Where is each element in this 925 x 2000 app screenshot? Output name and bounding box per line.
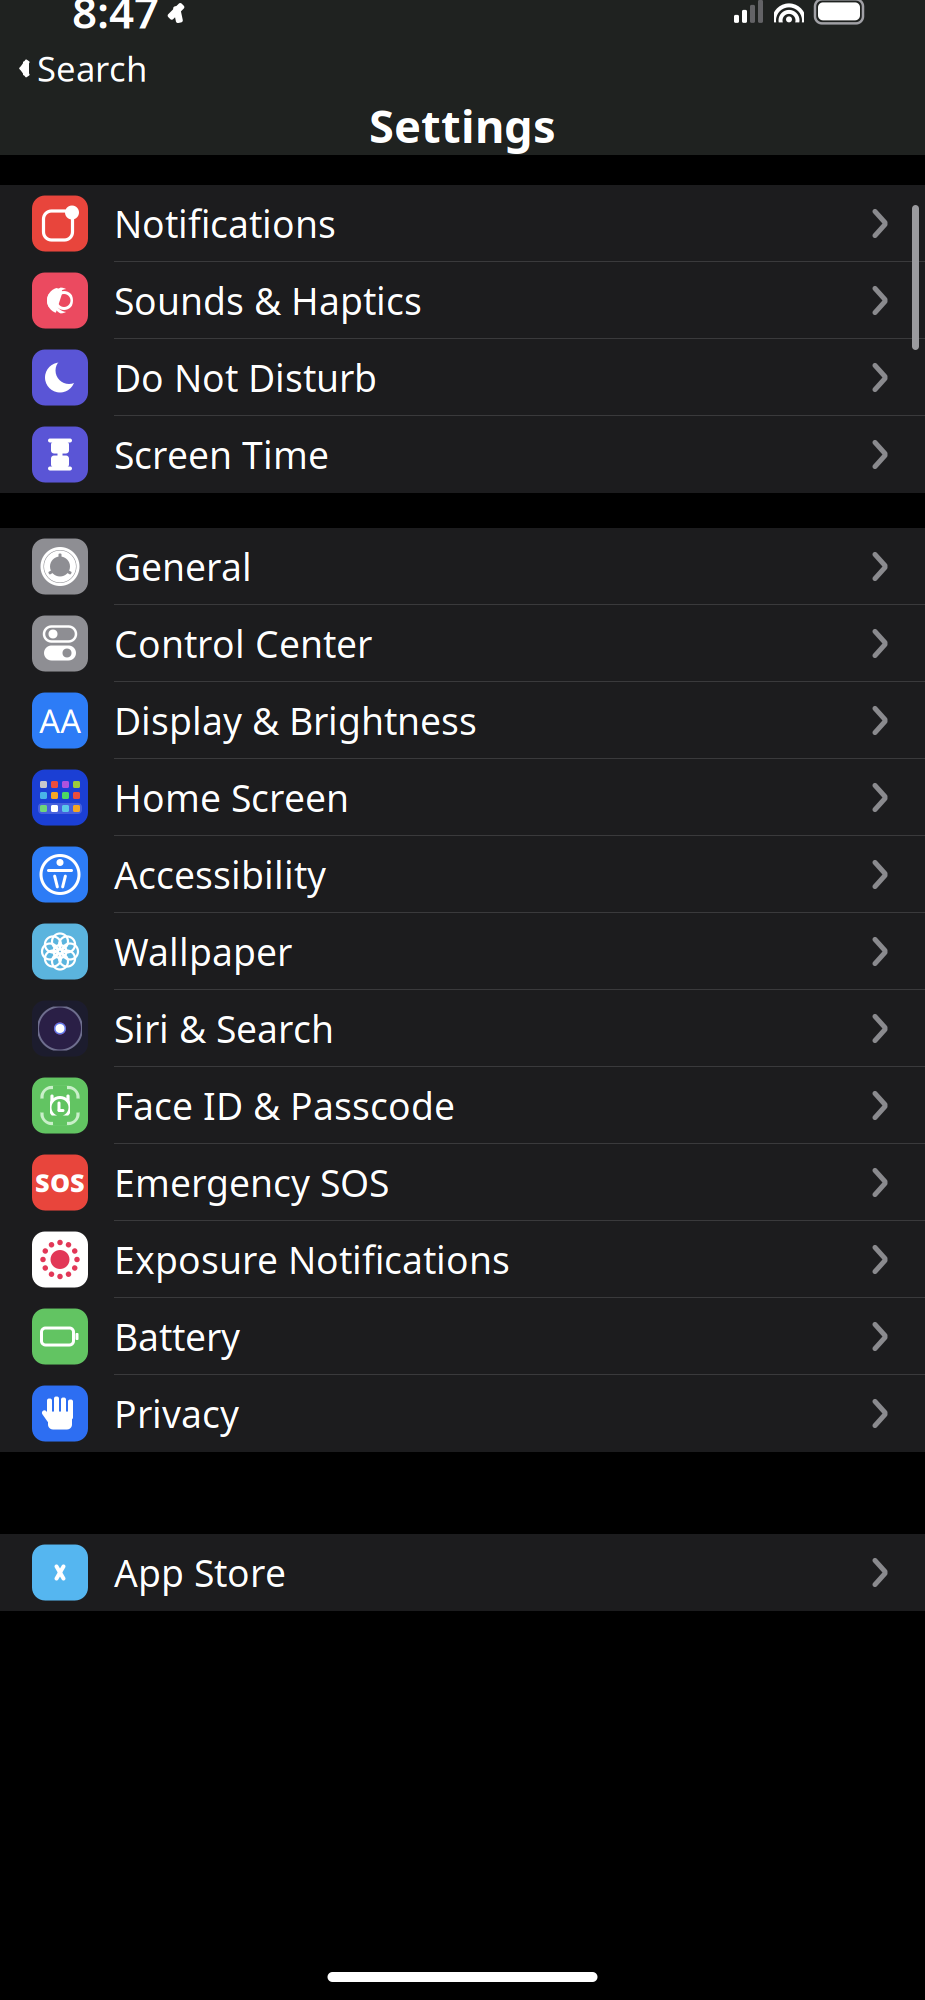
staticText: General xyxy=(114,542,252,591)
button[interactable]: AA xyxy=(0,682,925,759)
button[interactable]: App Store xyxy=(0,1534,925,1611)
staticText: Wallpaper xyxy=(114,927,292,976)
button[interactable]: Battery xyxy=(0,1298,925,1375)
button[interactable]: Face ID & Passcode xyxy=(0,1067,925,1144)
staticText: AA xyxy=(39,698,81,743)
staticText: Sounds & Haptics xyxy=(114,276,422,325)
button[interactable]: SOS xyxy=(0,1144,925,1221)
staticText: Face ID & Passcode xyxy=(114,1081,455,1130)
staticText: Notifications xyxy=(114,199,336,248)
button[interactable]: Notifications xyxy=(0,185,925,262)
staticText: SOS xyxy=(35,1166,85,1199)
staticText: 8:47 xyxy=(72,0,159,41)
button[interactable]: Privacy xyxy=(0,1375,925,1452)
button[interactable]: Do Not Disturb xyxy=(0,339,925,416)
staticText: Exposure Notifications xyxy=(114,1235,510,1284)
staticText: Control Center xyxy=(114,619,372,668)
staticText: App Store xyxy=(114,1548,286,1597)
staticText: Accessibility xyxy=(114,850,326,899)
button[interactable]: Home Screen xyxy=(0,759,925,836)
button[interactable]: General xyxy=(0,528,925,605)
staticText: Siri & Search xyxy=(114,1004,334,1053)
staticText: Battery xyxy=(114,1312,240,1361)
button[interactable]: Screen Time xyxy=(0,416,925,493)
staticText: Do Not Disturb xyxy=(114,353,377,402)
button[interactable]: Search xyxy=(0,41,147,95)
button[interactable]: Accessibility xyxy=(0,836,925,913)
staticText: Settings xyxy=(369,95,556,156)
button[interactable]: Siri & Search xyxy=(0,990,925,1067)
button[interactable]: Control Center xyxy=(0,605,925,682)
staticText: Emergency SOS xyxy=(114,1158,389,1207)
button[interactable]: Exposure Notifications xyxy=(0,1221,925,1298)
staticText: Screen Time xyxy=(114,430,329,479)
button[interactable]: Wallpaper xyxy=(0,913,925,990)
staticText: Search xyxy=(37,45,147,91)
staticText: Privacy xyxy=(114,1389,239,1438)
staticText: Display & Brightness xyxy=(114,696,477,745)
staticText: Home Screen xyxy=(114,773,349,822)
button[interactable]: Sounds & Haptics xyxy=(0,262,925,339)
